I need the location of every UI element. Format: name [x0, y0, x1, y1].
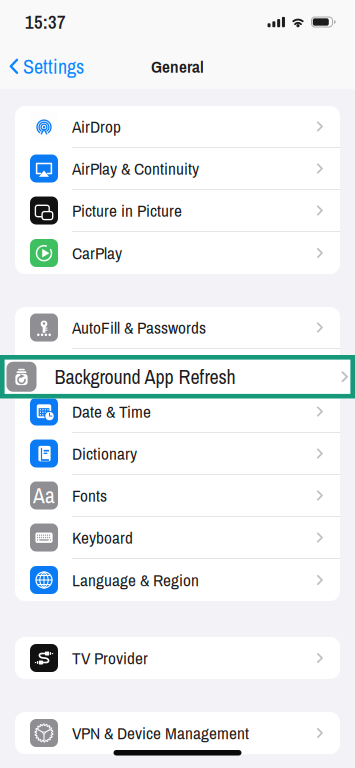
staticText: Language & Region — [72, 568, 199, 592]
button[interactable]: TV Provider — [15, 637, 340, 679]
staticText: Fonts — [72, 484, 107, 507]
button[interactable]: Background App Refresh — [15, 349, 340, 390]
button[interactable]: AirPlay & Continuity — [15, 148, 340, 189]
button[interactable]: Keyboard — [15, 517, 340, 558]
button[interactable]: Picture in Picture — [15, 190, 340, 231]
staticText: 15:37 — [25, 9, 66, 34]
staticText: Aa — [33, 481, 55, 510]
button[interactable]: Background App Refresh — [0, 355, 355, 398]
button[interactable]: Aa — [15, 475, 340, 516]
staticText: VPN & Device Management — [72, 721, 249, 745]
staticText: CarPlay — [72, 241, 122, 265]
staticText: Picture in Picture — [72, 199, 182, 222]
staticText: AirPlay & Continuity — [72, 157, 199, 180]
staticText: Dictionary — [72, 442, 137, 465]
button[interactable]: Dictionary — [15, 433, 340, 474]
staticText: Date & Time — [72, 400, 151, 423]
button[interactable]: AirDrop — [15, 106, 340, 147]
button[interactable]: CarPlay — [15, 232, 340, 274]
staticText: TV Provider — [72, 646, 148, 670]
button[interactable]: VPN & Device Management — [15, 712, 340, 754]
staticText: Background App Refresh — [72, 358, 230, 381]
staticText: Keyboard — [72, 526, 133, 549]
button[interactable]: Date & Time — [15, 391, 340, 432]
button[interactable]: Settings — [0, 46, 92, 86]
staticText: Background App Refresh — [54, 363, 235, 390]
button[interactable]: Language & Region — [15, 559, 340, 601]
staticText: Settings — [23, 53, 84, 80]
button[interactable]: AutoFill & Passwords — [15, 307, 340, 348]
staticText: General — [151, 55, 204, 78]
staticText: AutoFill & Passwords — [72, 316, 206, 339]
staticText: AirDrop — [72, 115, 121, 138]
